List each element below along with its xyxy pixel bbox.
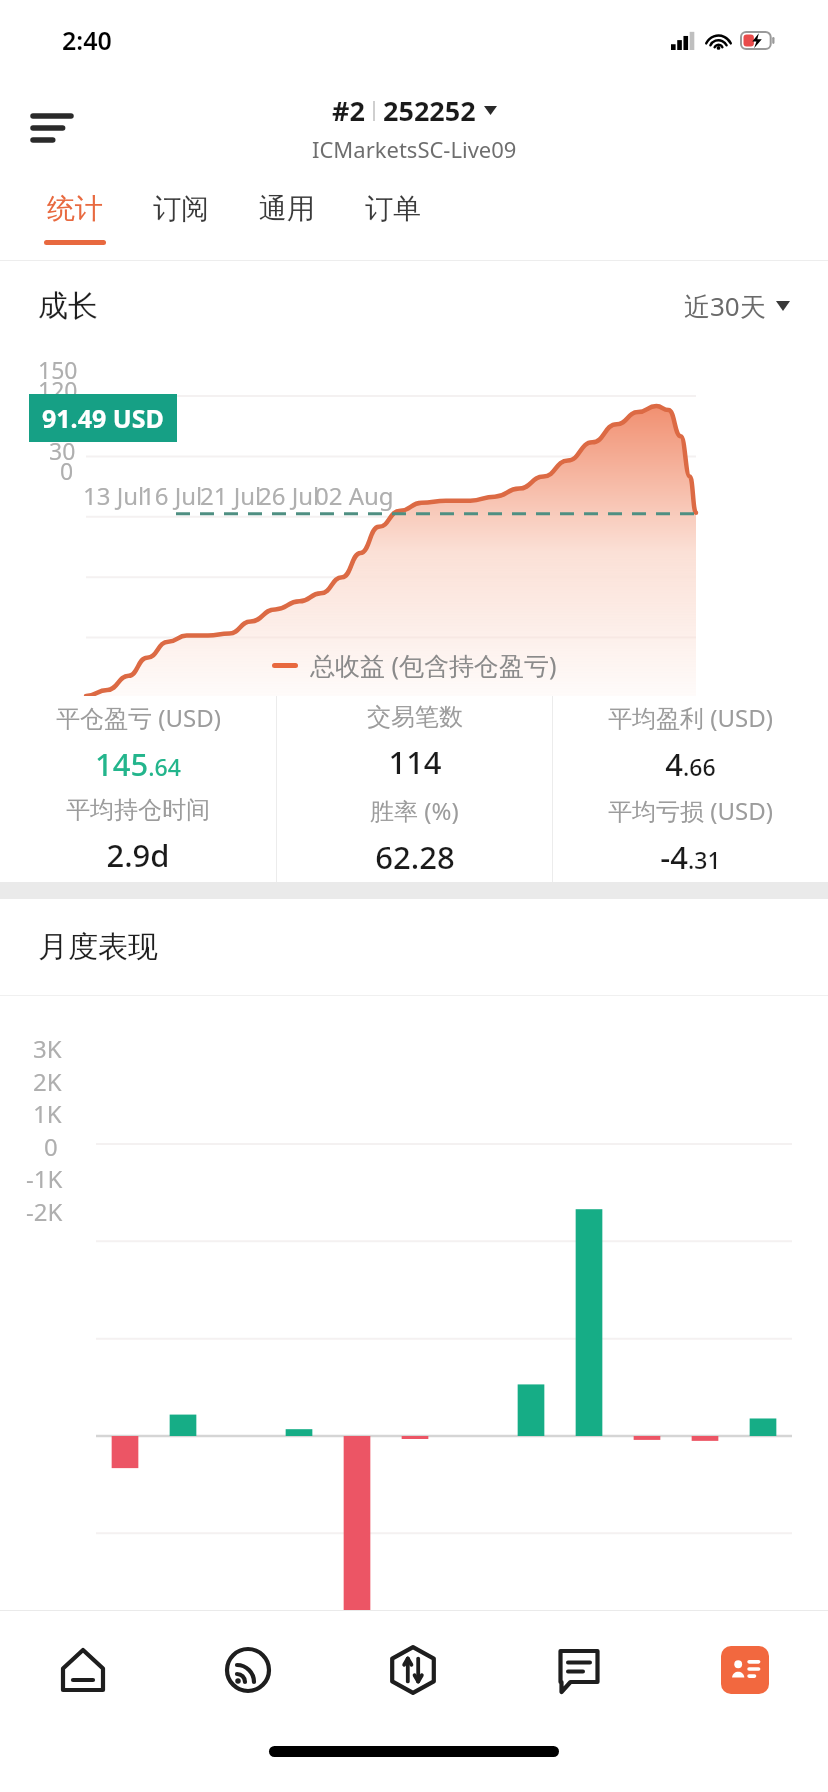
staticText: 02 Aug — [315, 479, 394, 512]
staticText: 月度表现 — [38, 928, 158, 966]
button[interactable]: Home — [0, 1610, 165, 1730]
staticText: 交易笔数 — [367, 702, 463, 732]
staticText: 2:40 — [62, 23, 112, 57]
staticText: 26 Jul — [258, 479, 320, 512]
staticText: ICMarketsSC-Live09 — [312, 134, 517, 164]
staticText: 60 — [49, 414, 76, 445]
staticText: 平仓盈亏 (USD) — [56, 701, 221, 734]
button[interactable]: 订阅 — [128, 176, 234, 260]
button[interactable]: 订单 — [340, 176, 446, 260]
staticText: 90 — [49, 394, 76, 425]
staticText: 114 — [388, 741, 442, 783]
button[interactable]: Profile — [662, 1610, 828, 1730]
staticText: 平均亏损 (USD) — [608, 794, 773, 827]
staticText: 1K — [33, 1097, 62, 1130]
staticText: 21 Jul — [200, 479, 262, 512]
staticText: 13 Jul — [83, 479, 145, 512]
staticText: 62.28 — [375, 836, 455, 878]
staticText: 总收益 (包含持仓盈亏) — [310, 648, 557, 682]
staticText: 平均盈利 (USD) — [608, 701, 773, 734]
staticText: 成长 — [38, 287, 98, 325]
staticText: 145.64 — [95, 743, 181, 785]
button[interactable]: 统计 — [22, 176, 128, 260]
staticText: 订阅 — [153, 191, 209, 226]
staticText: 统计 — [47, 191, 103, 226]
button[interactable]: Menu — [24, 100, 80, 156]
staticText: 平均持仓时间 — [66, 795, 210, 825]
staticText: -4.31 — [660, 836, 721, 878]
button[interactable]: 通用 — [234, 176, 340, 260]
staticText: 2K — [33, 1065, 62, 1098]
staticText: 2.9d — [106, 834, 170, 876]
staticText: 订单 — [365, 191, 421, 226]
staticText: 0 — [44, 1130, 58, 1163]
staticText: 0 — [60, 455, 74, 486]
staticText: 120 — [38, 374, 78, 405]
button[interactable]: 成长 — [0, 261, 828, 351]
staticText: 150 — [38, 354, 78, 385]
staticText: -1K — [26, 1162, 63, 1195]
staticText: #2 — [332, 92, 365, 129]
button[interactable]: Trade — [330, 1610, 496, 1730]
button[interactable]: #2 — [312, 92, 517, 164]
staticText: 16 Jul — [141, 479, 203, 512]
staticText: 近30天 — [684, 288, 766, 324]
staticText: 252252 — [383, 92, 476, 129]
staticText: -2K — [26, 1195, 63, 1228]
button[interactable]: Messages — [496, 1610, 662, 1730]
staticText: 30 — [49, 435, 76, 466]
button[interactable]: Signals — [165, 1610, 330, 1730]
staticText: 通用 — [259, 191, 315, 226]
staticText: 4.66 — [665, 743, 716, 785]
staticText: 3K — [33, 1032, 62, 1065]
staticText: 91.49 USD — [42, 401, 164, 435]
staticText: 胜率 (%) — [370, 794, 459, 827]
